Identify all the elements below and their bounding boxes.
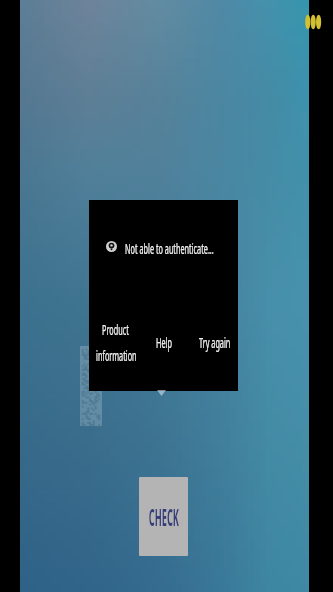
staticText: Not able to authenticate...	[125, 238, 214, 258]
button[interactable]: CHECK	[139, 477, 188, 556]
staticText: Try again	[199, 333, 231, 352]
staticText: Help	[156, 333, 172, 352]
staticText: Product	[102, 320, 129, 339]
staticText: CHECK	[149, 501, 179, 532]
staticText: information	[96, 346, 137, 365]
other: Status indicator	[305, 14, 321, 30]
